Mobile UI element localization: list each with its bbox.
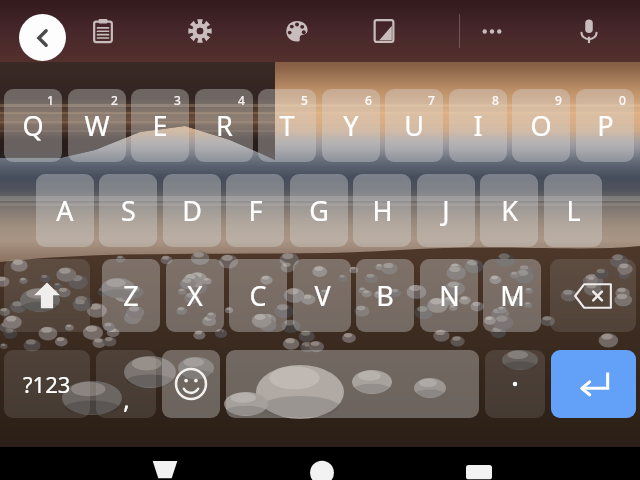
button[interactable]: K [480,174,538,247]
staticText: ?123 [23,369,71,399]
staticText: W [84,107,110,144]
staticText: L [566,192,581,229]
staticText: I [473,107,483,144]
staticText: 2 [111,92,118,108]
button[interactable]: A [36,174,94,247]
staticText: C [249,277,267,314]
button[interactable]: E [131,89,189,162]
button[interactable]: Home [305,465,339,480]
staticText: O [530,107,552,144]
button[interactable]: J [417,174,475,247]
staticText: Z [123,277,139,314]
button[interactable]: G [290,174,348,247]
staticText: E [152,107,168,144]
button[interactable]: Space [226,350,479,418]
button[interactable]: F [226,174,284,247]
staticText: 5 [301,92,308,108]
staticText: R [216,107,233,144]
button[interactable]: L [544,174,602,247]
staticText: 1 [47,92,54,108]
button[interactable]: Backspace [550,259,636,332]
button[interactable]: V [293,259,351,332]
staticText: D [182,192,202,229]
staticText: , [123,381,130,416]
staticText: X [187,277,203,314]
staticText: H [372,192,393,229]
button[interactable]: N [420,259,478,332]
staticText: B [376,277,394,314]
button[interactable]: Back [140,461,190,480]
button[interactable]: Q [4,89,62,162]
button[interactable]: D [163,174,221,247]
staticText: A [56,192,74,229]
staticText: S [121,192,136,229]
button[interactable]: Period [485,350,545,418]
staticText: 7 [428,92,435,108]
staticText: J [442,192,450,229]
staticText: 4 [238,92,245,108]
button[interactable]: O [512,89,570,162]
button[interactable]: Z [102,259,160,332]
staticText: N [439,277,460,314]
button[interactable]: I [449,89,507,162]
button[interactable]: Clipboard [81,9,125,53]
staticText: V [314,277,331,314]
button[interactable]: Comma [96,350,156,418]
button[interactable]: H [353,174,411,247]
staticText: Q [22,107,44,144]
staticText: U [404,107,424,144]
button[interactable]: U [385,89,443,162]
staticText: 6 [365,92,372,108]
staticText: Y [343,107,359,144]
button[interactable]: T [258,89,316,162]
staticText: 8 [492,92,499,108]
staticText: 9 [555,92,562,108]
button[interactable]: Resize keyboard [362,9,406,53]
button[interactable]: Recent apps [462,465,496,480]
button[interactable]: More options [470,9,514,53]
button[interactable]: W [68,89,126,162]
staticText: 3 [174,92,181,108]
button[interactable]: R [195,89,253,162]
staticText: M [500,277,525,314]
button[interactable]: Enter [551,350,636,418]
button[interactable]: ?123 [4,350,90,418]
button[interactable]: X [166,259,224,332]
button[interactable]: Theme [275,9,319,53]
button[interactable]: Shift [4,259,90,332]
button[interactable]: Y [322,89,380,162]
button[interactable]: B [356,259,414,332]
staticText: G [309,192,329,229]
button[interactable]: Settings [178,9,222,53]
button[interactable]: Back [19,14,66,61]
button[interactable]: C [229,259,287,332]
staticText: F [248,192,263,229]
button[interactable]: S [99,174,157,247]
staticText: T [279,107,295,144]
button[interactable]: M [483,259,541,332]
button[interactable]: Voice input [567,9,611,53]
staticText: 0 [619,92,626,108]
staticText: P [597,107,614,144]
staticText: K [501,192,518,229]
button[interactable]: Emoji [162,350,220,418]
button[interactable]: P [576,89,634,162]
